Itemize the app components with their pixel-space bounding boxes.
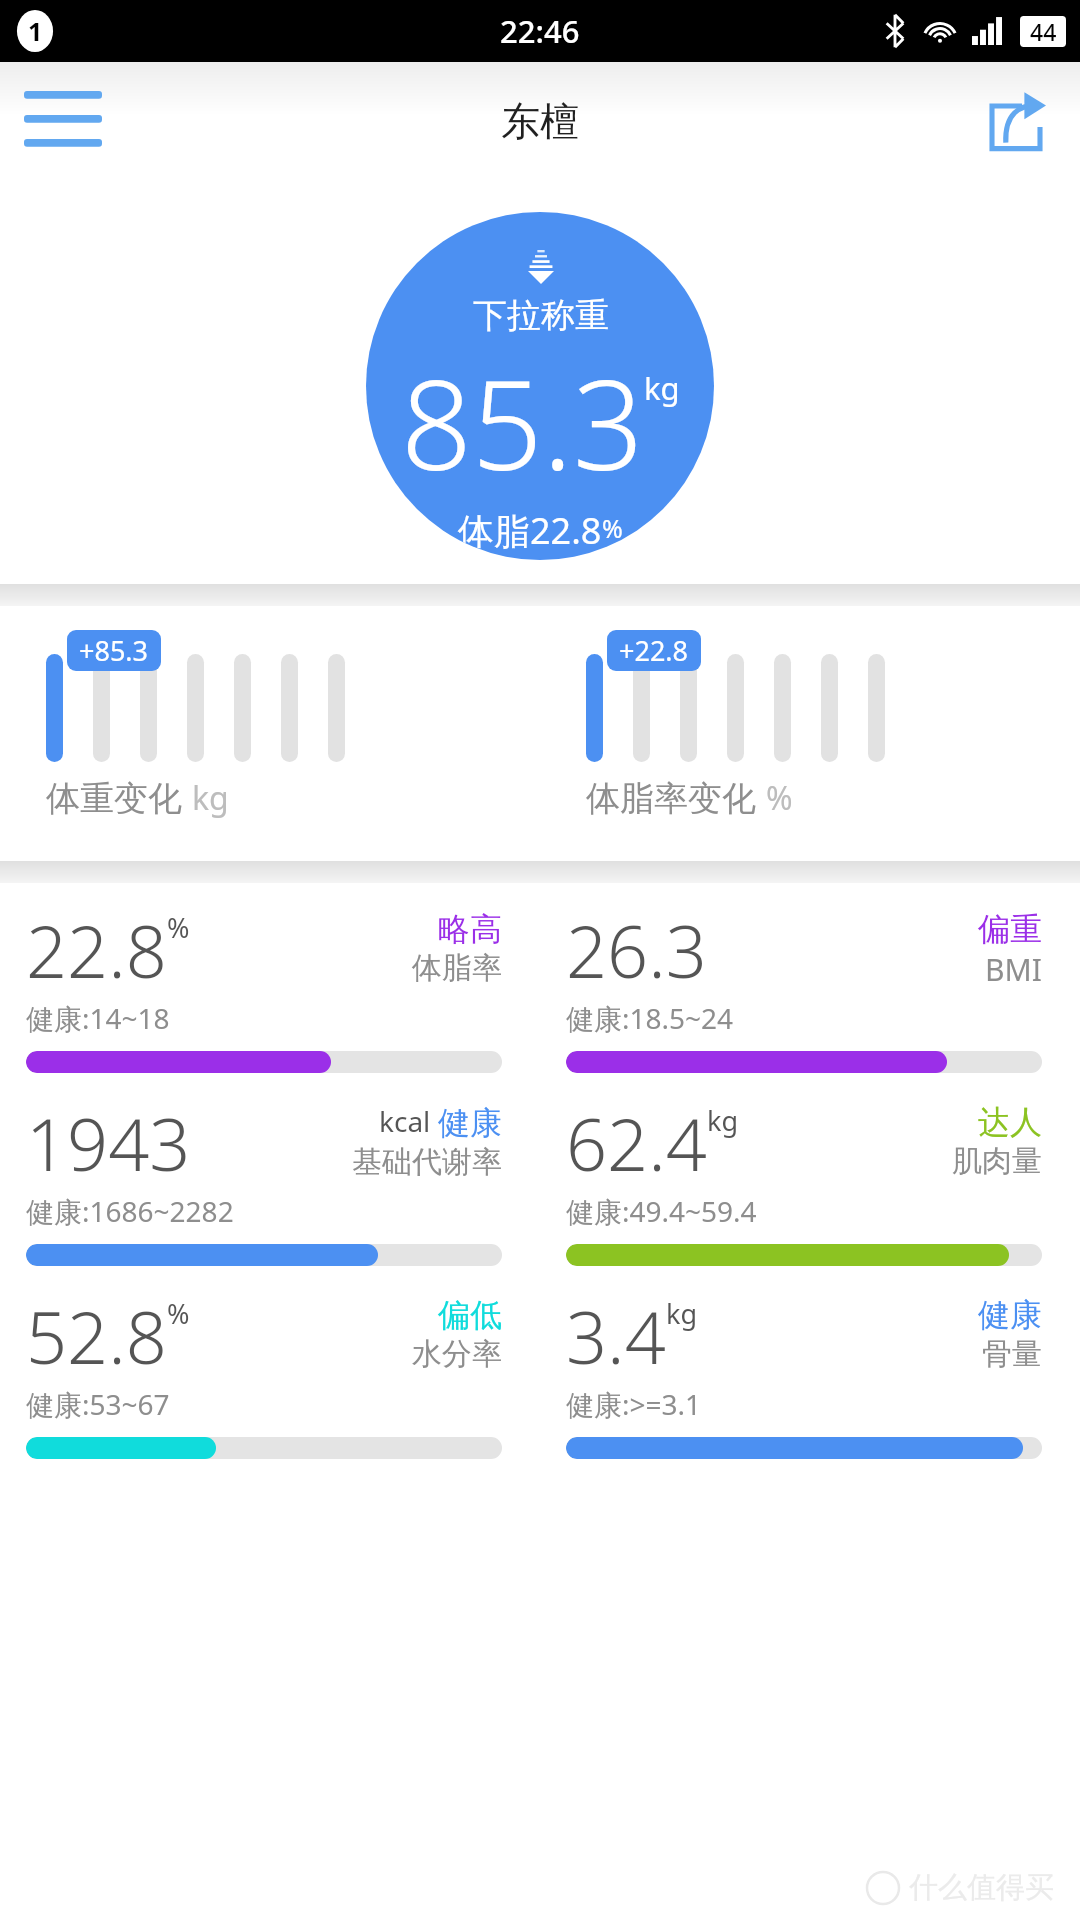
button[interactable]: +22.8 [540,606,1080,861]
staticText: 东檀 [501,97,579,146]
staticText: 26.3 [566,901,707,999]
staticText: 健康:18.5~24 [566,999,734,1037]
staticText: 基础代谢率 [352,1143,502,1181]
button[interactable]: +85.3 [0,606,540,861]
staticText: kg [707,1102,739,1139]
staticText: 1943 [26,1094,191,1192]
staticText: 健康:49.4~59.4 [566,1192,757,1230]
staticText: % [766,776,793,820]
button[interactable]: 22.8 [0,883,540,1076]
button[interactable]: 26.3 [540,883,1080,1076]
staticText: 健康:>=3.1 [566,1385,702,1423]
staticText: 水分率 [412,1335,502,1373]
button[interactable]: 52.8 [0,1269,540,1462]
staticText: 健康:53~67 [26,1385,170,1423]
button[interactable]: 下拉称重 [366,212,714,560]
button[interactable]: Menu [8,78,118,164]
staticText: 体脂22.8 [458,506,602,555]
staticText: 52.8 [26,1287,167,1385]
staticText: 22.8 [26,901,167,999]
button[interactable]: 1943 [0,1076,540,1269]
staticText: 肌肉量 [952,1142,1042,1180]
staticText: 下拉称重 [473,294,609,337]
staticText: 62.4 [566,1094,707,1192]
staticText: 44 [1030,16,1057,47]
button[interactable]: 3.4 [540,1269,1080,1462]
staticText: 体重变化 [46,777,182,820]
button[interactable]: 62.4 [540,1076,1080,1269]
staticText: +22.8 [619,632,689,669]
staticText: 3.4 [566,1287,666,1385]
staticText: 22:46 [500,10,580,52]
staticText: % [167,909,190,946]
staticText: kg [666,1295,698,1332]
button[interactable]: Share [970,75,1062,167]
staticText: 体脂率 [412,949,502,987]
staticText: % [167,1295,190,1332]
staticText: 偏重 [978,909,1042,949]
staticText: 85.3 [401,337,644,506]
staticText: 略高 [438,909,502,949]
staticText: 达人 [978,1102,1042,1142]
staticText: 健康:14~18 [26,999,170,1037]
staticText: 1 [28,14,43,48]
staticText: kcal [379,1102,431,1140]
staticText: BMI [985,949,1042,990]
staticText: 体脂率变化 [586,777,756,820]
staticText: 偏低 [438,1295,502,1335]
staticText: 健康 [438,1103,502,1143]
staticText: kg [192,776,229,820]
staticText: 什么值得买 [909,1869,1054,1906]
staticText: 健康:1686~2282 [26,1192,234,1230]
staticText: +85.3 [79,632,149,669]
staticText: 骨量 [982,1335,1042,1373]
staticText: % [602,511,623,545]
staticText: 健康 [978,1295,1042,1335]
staticText: kg [644,367,680,409]
